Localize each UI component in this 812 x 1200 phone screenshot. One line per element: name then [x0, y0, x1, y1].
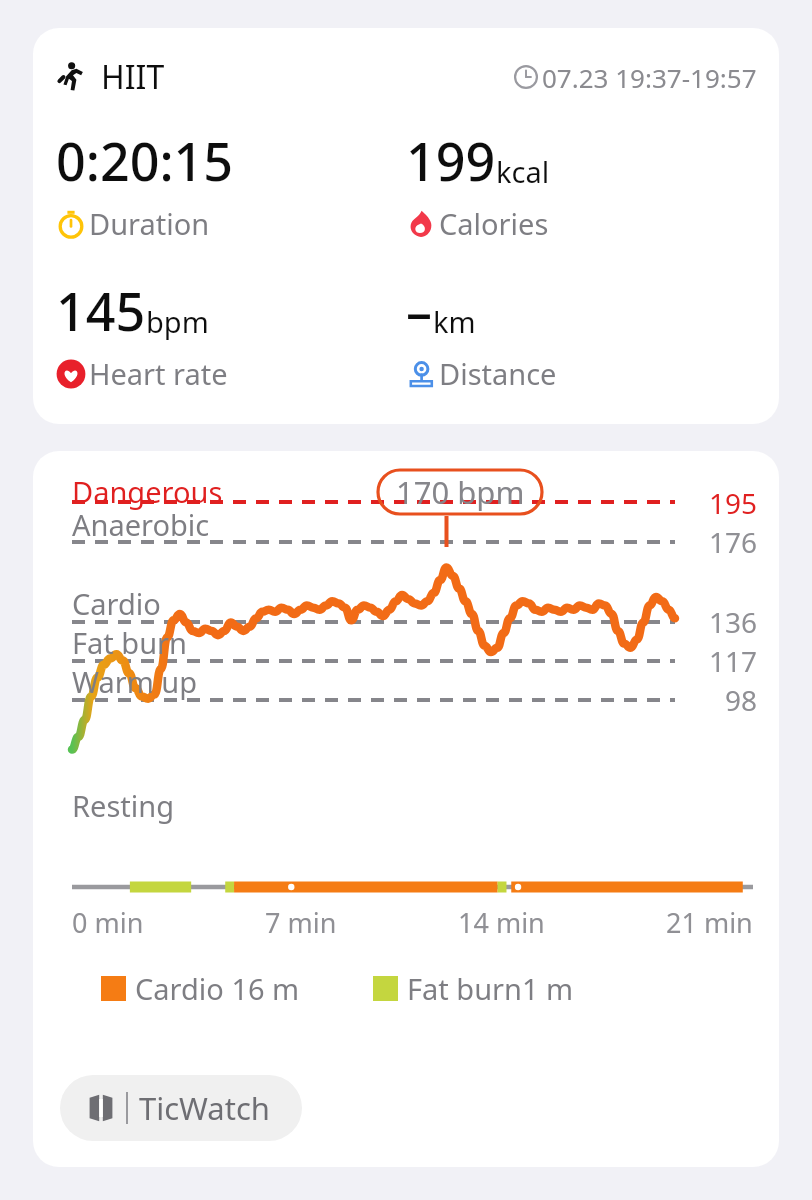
staticText: 14 min [458, 904, 545, 941]
staticText: 170 bpm [396, 471, 525, 513]
staticText: km [433, 302, 476, 341]
staticText: TicWatch [139, 1087, 270, 1129]
button[interactable]: TicWatch logo [60, 1075, 302, 1141]
staticText: 0:20:15 [56, 125, 234, 196]
staticText: 7 min [265, 904, 337, 941]
staticText: Distance [439, 354, 557, 393]
staticText: 117 [709, 642, 758, 680]
other: TicWatch logo [86, 1093, 116, 1123]
staticText: Resting [72, 786, 174, 825]
staticText: Fat burn1 m [407, 969, 574, 1008]
staticText: kcal [496, 152, 550, 191]
staticText: Anaerobic [72, 505, 210, 544]
staticText: 0 min [72, 904, 144, 941]
staticText: 199 [406, 125, 496, 196]
button[interactable]: 145 [56, 275, 406, 393]
button[interactable]: 170 bpm [376, 468, 544, 516]
staticText: 195 [709, 484, 758, 522]
staticText: Warm up [72, 662, 198, 701]
staticText: Fat burn [72, 623, 187, 662]
button[interactable]: 0:20:15 [56, 125, 406, 243]
staticText: Duration [89, 204, 210, 243]
button[interactable]: – [406, 275, 757, 393]
staticText: 07.23 19:37-19:57 [542, 60, 757, 95]
button[interactable]: 199 [406, 125, 757, 243]
staticText: Calories [439, 204, 549, 243]
staticText: Dangerous [72, 472, 223, 511]
staticText: 145 [56, 275, 146, 346]
staticText: 98 [725, 681, 758, 719]
staticText: 176 [709, 523, 758, 561]
staticText: Cardio 16 m [135, 969, 300, 1008]
staticText: HIIT [101, 55, 165, 99]
staticText: – [406, 275, 433, 346]
staticText: 21 min [666, 904, 753, 941]
staticText: Heart rate [89, 354, 228, 393]
staticText: bpm [146, 302, 209, 341]
staticText: Cardio [72, 584, 161, 623]
staticText: 136 [709, 603, 758, 641]
